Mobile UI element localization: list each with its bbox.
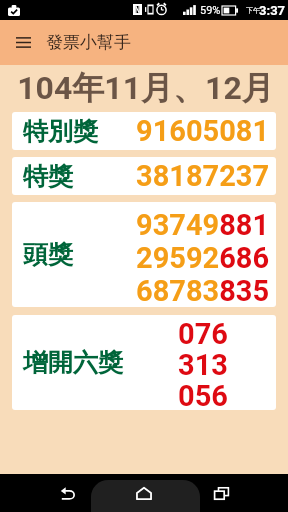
staticText: 104年11月、12月 xyxy=(17,68,274,108)
button[interactable]: Back xyxy=(45,474,89,512)
staticText: 93749881 xyxy=(136,208,270,241)
staticText: 29592686 xyxy=(136,241,270,274)
staticText: 38187237 xyxy=(136,159,270,193)
button[interactable]: 特別獎 xyxy=(12,112,276,150)
staticText: 發票小幫手 xyxy=(46,32,131,53)
staticText: 頭獎 xyxy=(23,239,73,270)
button[interactable]: 特獎 xyxy=(12,157,276,195)
button[interactable]: 增開六獎 xyxy=(12,315,276,410)
staticText: 313 xyxy=(178,348,228,379)
staticText: 特別獎 xyxy=(23,116,98,147)
staticText: 68783835 xyxy=(136,274,270,307)
staticText: 3:37 xyxy=(259,3,286,18)
staticText: 076 xyxy=(178,317,228,348)
button[interactable]: Home xyxy=(122,474,166,512)
button[interactable]: Recent apps xyxy=(199,474,243,512)
staticText: 增開六獎 xyxy=(23,347,123,378)
staticText: 特獎 xyxy=(23,161,73,192)
staticText: 59% xyxy=(200,4,221,17)
staticText: 91605081 xyxy=(136,114,270,148)
staticText: 056 xyxy=(178,379,228,410)
button[interactable]: 頭獎 xyxy=(12,202,276,307)
staticText: 下午 xyxy=(246,6,260,15)
button[interactable]: Open navigation menu xyxy=(0,20,46,65)
